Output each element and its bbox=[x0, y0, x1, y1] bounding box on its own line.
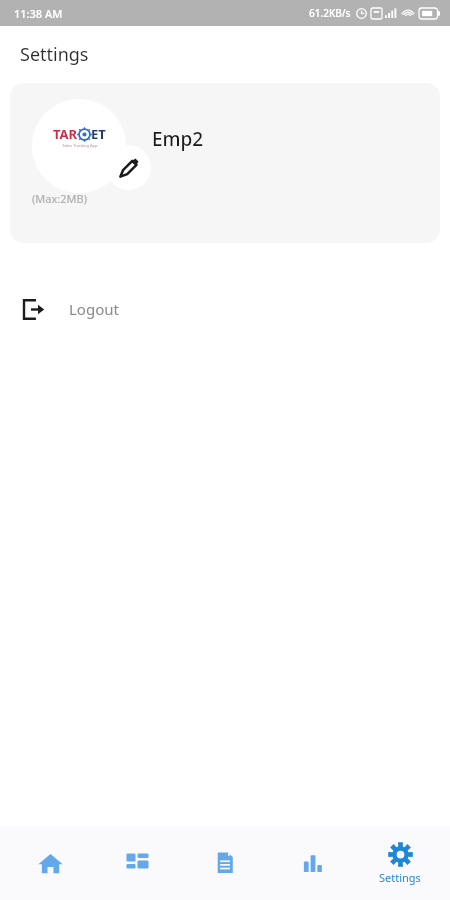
staticText: 61.2KB/s bbox=[309, 6, 351, 20]
staticText: Settings bbox=[20, 42, 89, 67]
button[interactable]: TAR bbox=[10, 83, 440, 243]
button[interactable]: Documents bbox=[187, 826, 263, 900]
staticText: Sales Tracking App bbox=[62, 143, 98, 148]
staticText: TAR bbox=[53, 125, 78, 143]
staticText: Settings bbox=[379, 870, 421, 885]
staticText: ET bbox=[91, 125, 106, 143]
button[interactable]: Edit profile image bbox=[106, 145, 151, 190]
staticText: (Max:2MB) bbox=[32, 191, 87, 206]
staticText: 11:38 AM bbox=[14, 6, 63, 21]
staticText: Logout bbox=[69, 299, 119, 319]
button[interactable]: Settings bbox=[362, 826, 438, 900]
staticText: Emp2 bbox=[152, 126, 204, 152]
button[interactable]: Logout bbox=[0, 287, 450, 331]
button[interactable]: Reports bbox=[275, 826, 351, 900]
button[interactable]: Dashboard bbox=[99, 826, 175, 900]
button[interactable]: Home bbox=[12, 826, 88, 900]
